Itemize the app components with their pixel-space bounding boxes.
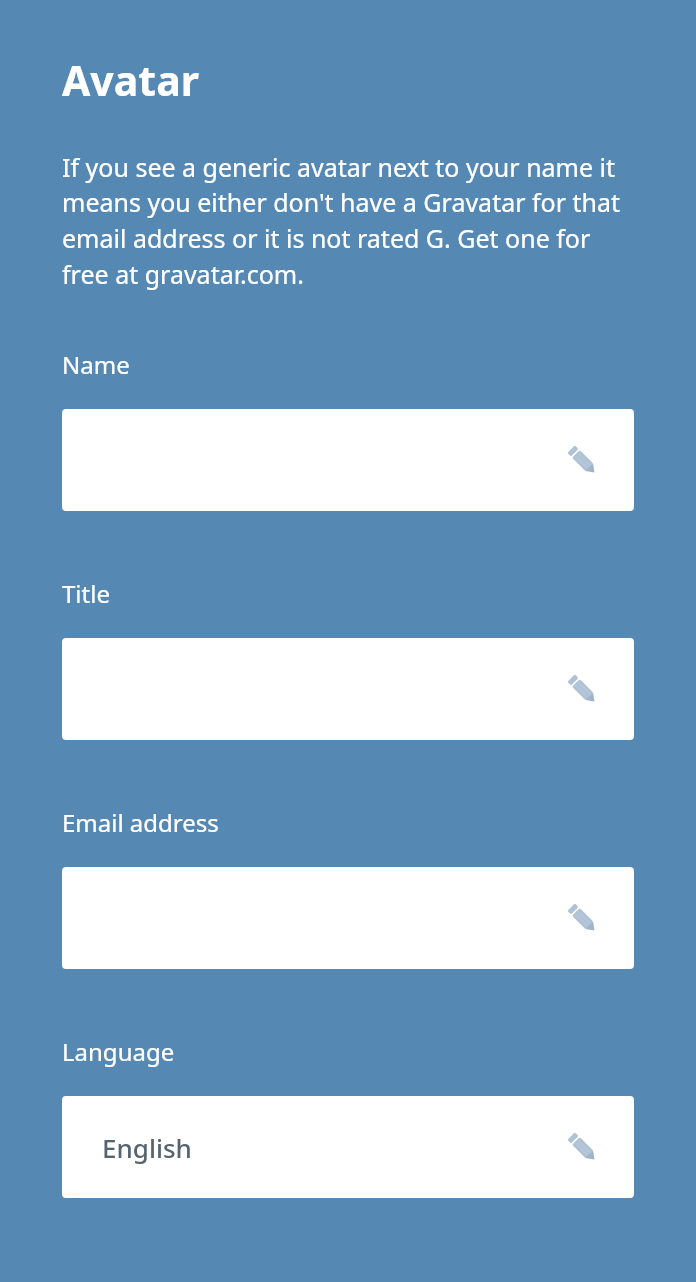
staticText: Avatar bbox=[62, 52, 200, 108]
staticText: Title bbox=[62, 577, 110, 610]
staticText: If you see a generic avatar next to your… bbox=[62, 150, 638, 291]
staticText: English bbox=[102, 1130, 192, 1165]
staticText: Email address bbox=[62, 806, 219, 839]
button[interactable]: Edit name bbox=[62, 409, 634, 511]
staticText: Name bbox=[62, 348, 130, 381]
button[interactable]: Edit language bbox=[62, 1096, 634, 1198]
staticText: Language bbox=[62, 1035, 175, 1068]
button[interactable]: Edit title bbox=[62, 638, 634, 740]
button[interactable]: Edit email address bbox=[62, 867, 634, 969]
